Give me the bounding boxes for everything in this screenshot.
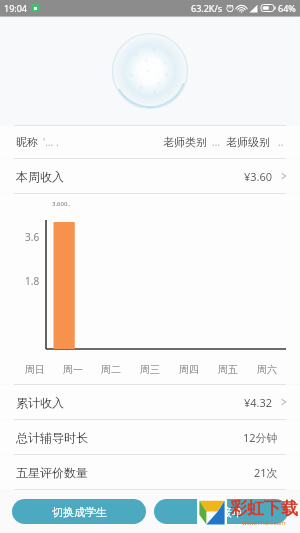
- button[interactable]: 总计辅导时长: [0, 420, 300, 454]
- staticText: 3.600..: [52, 200, 71, 208]
- staticText: 老师级别: [226, 135, 270, 149]
- staticText: www.7hon.com: [242, 519, 286, 527]
- staticText: '... .: [43, 135, 59, 149]
- button[interactable]: 累计收入: [0, 385, 300, 419]
- staticText: 周一: [63, 363, 83, 376]
- staticText: 昵称: [16, 135, 38, 149]
- button[interactable]: 上线接单: [154, 499, 288, 524]
- staticText: ¥4.32: [244, 395, 273, 410]
- staticText: ...: [212, 135, 221, 149]
- staticText: 五星评价数量: [16, 465, 88, 480]
- staticText: 本周收入: [16, 169, 64, 184]
- staticText: 周日: [25, 363, 45, 376]
- staticText: ..: [278, 135, 284, 149]
- staticText: 总计辅导时长: [16, 430, 88, 445]
- button[interactable]: 本周收入: [0, 159, 300, 193]
- staticText: 周四: [179, 363, 199, 376]
- staticText: 64%: [278, 2, 296, 14]
- staticText: 63.2K/s: [191, 2, 223, 14]
- staticText: 切换成学生: [52, 505, 107, 519]
- staticText: 彩虹下载: [230, 498, 298, 519]
- staticText: 21次: [254, 465, 278, 480]
- staticText: 周二: [101, 363, 121, 376]
- staticText: 19:04: [4, 2, 28, 14]
- staticText: 周六: [257, 363, 277, 376]
- staticText: 12分钟: [243, 430, 278, 445]
- button[interactable]: 昵称: [0, 126, 300, 158]
- staticText: 周三: [140, 363, 160, 376]
- staticText: 周五: [218, 363, 238, 376]
- staticText: ¥3.60: [244, 169, 273, 184]
- staticText: 老师类别: [163, 135, 207, 149]
- button[interactable]: 切换成学生: [12, 499, 146, 524]
- staticText: 1.8: [25, 274, 40, 288]
- button[interactable]: 五星评价数量: [0, 455, 300, 489]
- staticText: 累计收入: [16, 395, 64, 410]
- staticText: 上线接单: [199, 505, 243, 519]
- staticText: 3.6: [25, 230, 40, 244]
